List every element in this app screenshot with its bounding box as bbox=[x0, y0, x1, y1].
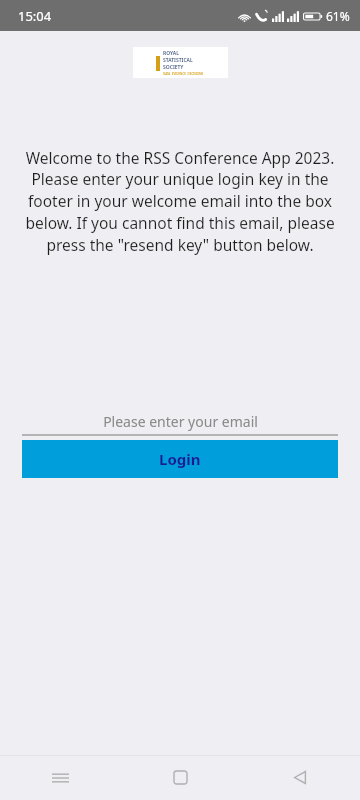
staticText: Welcome to the RSS Conference App 2023. … bbox=[16, 147, 344, 256]
button[interactable]: Home bbox=[120, 755, 240, 800]
staticText: 61% bbox=[326, 8, 350, 24]
button[interactable]: Please enter your email bbox=[22, 408, 338, 434]
button[interactable]: Back bbox=[240, 755, 360, 800]
staticText: DATA EVIDENCE DECISIONS bbox=[163, 72, 204, 76]
button[interactable]: Login bbox=[22, 440, 338, 478]
staticText: Login bbox=[159, 449, 201, 469]
staticText: 15:04 bbox=[18, 7, 52, 25]
staticText: STATISTICAL bbox=[163, 57, 193, 64]
staticText: ROYAL bbox=[163, 50, 179, 57]
staticText: SOCIETY bbox=[163, 64, 184, 71]
button[interactable]: Recent apps bbox=[0, 755, 120, 800]
staticText: Please enter your email bbox=[103, 412, 258, 431]
